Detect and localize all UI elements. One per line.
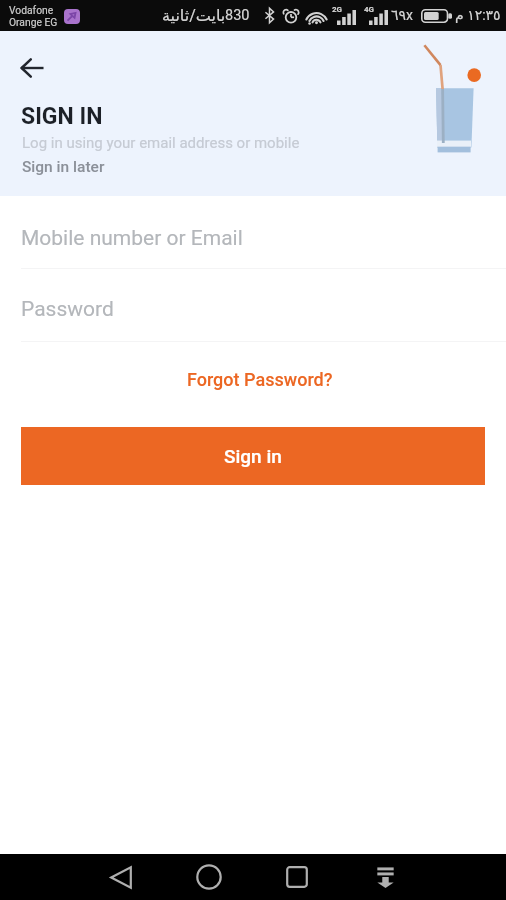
staticText: 2G — [332, 5, 343, 14]
staticText: بايت/ثانية — [162, 6, 226, 25]
button[interactable]: Back — [98, 854, 144, 900]
button[interactable]: Home — [186, 854, 232, 900]
staticText: Sign in later — [22, 158, 105, 176]
button[interactable]: Recent apps — [274, 854, 320, 900]
button[interactable]: Forgot Password? — [177, 364, 343, 395]
staticText: Sign in — [224, 445, 282, 467]
staticText: Log in using your email address or mobil… — [22, 134, 300, 152]
staticText: Mobile number or Email — [21, 226, 243, 251]
staticText: SIGN IN — [21, 103, 103, 130]
staticText: ١٢:٣٥ م — [455, 7, 501, 23]
staticText: 830 — [225, 7, 250, 24]
staticText: Password — [21, 297, 114, 322]
staticText: 4G — [364, 5, 375, 14]
staticText: Forgot Password? — [187, 369, 333, 390]
button[interactable]: Sign in — [21, 427, 485, 485]
button[interactable]: Hide navigation bar — [362, 854, 408, 900]
button[interactable]: Back — [10, 46, 54, 90]
staticText: Orange EG — [9, 16, 58, 28]
button[interactable]: Sign in later — [16, 153, 111, 181]
staticText: Vodafone — [9, 4, 54, 16]
staticText: ٦٩x — [391, 7, 413, 23]
